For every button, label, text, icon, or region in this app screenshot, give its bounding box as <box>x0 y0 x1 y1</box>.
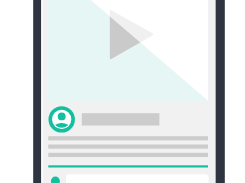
button[interactable] <box>43 172 215 183</box>
button[interactable]: Open profile <box>49 106 75 132</box>
button[interactable] <box>43 106 215 168</box>
button[interactable]: Play video <box>47 0 208 102</box>
